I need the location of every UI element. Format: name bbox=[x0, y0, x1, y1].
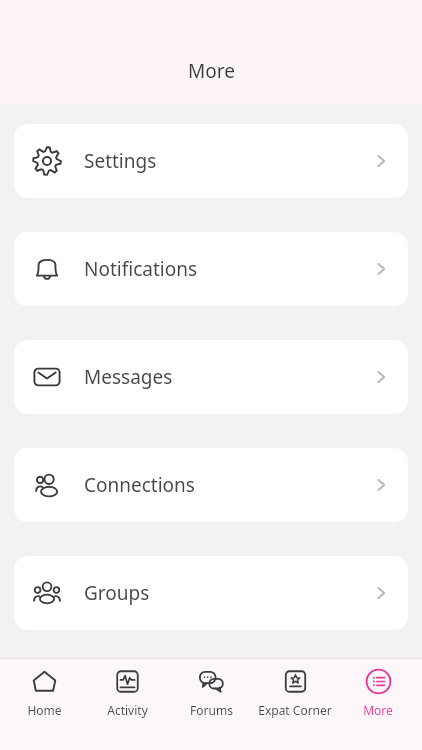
staticText: More bbox=[188, 58, 235, 84]
button[interactable]: Notifications bbox=[14, 232, 408, 306]
other: Expat Corner bbox=[282, 668, 309, 695]
staticText: Activity bbox=[107, 702, 148, 718]
other: Forums bbox=[198, 668, 225, 695]
staticText: Settings bbox=[84, 148, 157, 174]
staticText: Connections bbox=[84, 472, 195, 498]
staticText: Messages bbox=[84, 364, 173, 390]
button[interactable]: Expat Corner bbox=[255, 658, 335, 718]
other: Activity bbox=[114, 668, 141, 695]
other: More bbox=[365, 668, 392, 695]
button[interactable]: Forums bbox=[171, 658, 251, 718]
button[interactable]: Settings bbox=[14, 124, 408, 198]
other: Home bbox=[31, 668, 58, 695]
staticText: Groups bbox=[84, 580, 150, 606]
staticText: Notifications bbox=[84, 256, 198, 282]
button[interactable]: Activity bbox=[87, 658, 167, 718]
staticText: Home bbox=[27, 702, 62, 718]
button[interactable]: More bbox=[338, 658, 418, 718]
button[interactable]: Groups bbox=[14, 556, 408, 630]
staticText: More bbox=[363, 702, 393, 718]
button[interactable]: Messages bbox=[14, 340, 408, 414]
button[interactable]: Connections bbox=[14, 448, 408, 522]
staticText: Forums bbox=[190, 702, 233, 718]
staticText: Expat Corner bbox=[258, 702, 332, 718]
button[interactable]: Home bbox=[4, 658, 84, 718]
